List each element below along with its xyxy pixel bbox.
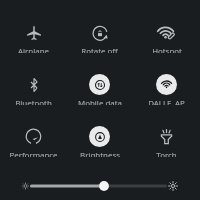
staticText: Hotspot xyxy=(152,46,182,53)
staticText: Torch xyxy=(156,150,177,157)
button[interactable]: Brightness slider xyxy=(0,175,200,197)
button[interactable]: Torch xyxy=(133,126,200,157)
staticText: Rotate off xyxy=(81,46,118,53)
staticText: Performance xyxy=(9,150,58,157)
staticText: DALLE_AP xyxy=(148,98,185,105)
button[interactable]: Rotate off xyxy=(66,22,133,53)
button[interactable]: Airplane xyxy=(0,22,66,53)
button[interactable]: Mobile data xyxy=(66,74,133,105)
button[interactable]: Brightness xyxy=(66,126,133,157)
button[interactable]: Bluetooth xyxy=(0,74,66,105)
button[interactable]: Performance xyxy=(0,126,66,157)
staticText: Mobile data xyxy=(78,98,122,105)
button[interactable]: Hotspot xyxy=(133,22,200,53)
staticText: Brightness xyxy=(80,150,120,157)
staticText: Airplane xyxy=(18,46,49,53)
button[interactable]: DALLE_AP xyxy=(133,74,200,105)
staticText: Bluetooth xyxy=(15,98,52,105)
